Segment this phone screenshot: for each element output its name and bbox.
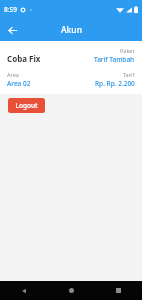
button[interactable]: Recent apps [95,281,142,300]
staticText: Logout [15,101,38,110]
staticText: Rp. Rp. 2.200 [95,79,135,88]
staticText: Akun [61,24,82,36]
button[interactable]: Back [0,281,48,300]
staticText: 8:59 [4,5,17,14]
button[interactable]: Back [2,20,22,40]
button[interactable]: Coba Fix [0,41,142,94]
button[interactable]: Logout [8,98,45,113]
staticText: Paket [120,47,135,54]
button[interactable]: Home [48,281,95,300]
staticText: Tarif [123,71,135,78]
staticText: Tarif Tambah [94,55,135,64]
staticText: Coba Fix [7,53,94,64]
staticText: Area [7,71,19,78]
staticText: Area 02 [7,79,31,88]
